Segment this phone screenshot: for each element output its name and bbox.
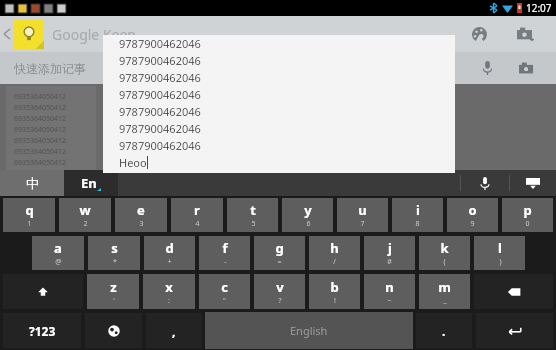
button[interactable]: x	[143, 274, 195, 309]
staticText: e	[137, 201, 145, 219]
staticText: '	[113, 296, 115, 306]
staticText: w	[79, 201, 91, 219]
staticText: f	[222, 239, 228, 257]
staticText: @	[55, 257, 62, 267]
staticText: j	[388, 239, 392, 257]
button[interactable]: o	[447, 198, 498, 232]
staticText: 6935364050412	[14, 114, 67, 125]
staticText: k	[440, 239, 449, 257]
staticText: r	[194, 201, 200, 219]
staticText: t	[250, 201, 256, 219]
staticText: i	[416, 201, 420, 219]
button[interactable]: Back	[0, 16, 14, 52]
button[interactable]: 中	[0, 170, 64, 196]
button[interactable]: b	[309, 274, 360, 309]
staticText: 8	[415, 219, 420, 229]
staticText: 4	[195, 219, 200, 229]
staticText: *	[113, 257, 117, 267]
staticText: 12:07	[526, 1, 552, 15]
staticText: .	[442, 323, 446, 339]
button[interactable]: g	[254, 236, 305, 270]
button[interactable]: d	[144, 236, 195, 270]
button[interactable]: z	[87, 274, 139, 309]
staticText: 2	[83, 219, 88, 229]
button[interactable]: f	[199, 236, 250, 270]
staticText: -	[224, 257, 227, 267]
staticText: d	[165, 239, 174, 257]
staticText: 6935364050412	[14, 158, 67, 169]
staticText: 6935364050412	[14, 136, 67, 147]
staticText: c	[221, 278, 228, 296]
button[interactable]: p	[502, 198, 553, 232]
button[interactable]: a	[32, 236, 84, 270]
staticText: v	[276, 278, 284, 296]
button[interactable]: Backspace	[474, 274, 553, 309]
button[interactable]: m	[419, 274, 470, 309]
button[interactable]: k	[419, 236, 470, 270]
button[interactable]: Enter	[476, 313, 553, 348]
button[interactable]: i	[392, 198, 443, 232]
staticText: g	[275, 239, 284, 257]
button[interactable]: j	[364, 236, 415, 270]
staticText: 9787900462046	[119, 138, 201, 155]
staticText: 9787900462046	[119, 53, 201, 70]
staticText: =	[277, 257, 282, 267]
staticText: 中	[26, 175, 39, 191]
staticText: En	[81, 174, 97, 192]
staticText: :	[168, 296, 170, 306]
button[interactable]: Photo note	[512, 53, 542, 83]
button[interactable]: n	[364, 274, 415, 309]
staticText: 1	[27, 219, 32, 229]
button[interactable]: Voice input	[461, 170, 509, 196]
staticText: 6935364050412	[14, 147, 67, 158]
staticText: l	[498, 239, 502, 257]
button[interactable]: r	[171, 198, 223, 232]
button[interactable]: v	[254, 274, 305, 309]
button[interactable]: c	[199, 274, 250, 309]
button[interactable]: l	[474, 236, 525, 270]
staticText: b	[330, 278, 339, 296]
staticText: x	[165, 278, 173, 296]
staticText: 5	[251, 219, 256, 229]
button[interactable]: t	[227, 198, 278, 232]
staticText: (	[443, 257, 446, 267]
button[interactable]: Voice note	[472, 53, 502, 83]
button[interactable]: .	[416, 313, 472, 348]
button[interactable]: q	[3, 198, 55, 232]
staticText: u	[358, 201, 367, 219]
button[interactable]: h	[309, 236, 360, 270]
button[interactable]: ,	[146, 313, 202, 348]
button[interactable]: En	[64, 170, 118, 196]
staticText: Heoo	[119, 155, 147, 170]
staticText: Google Keep	[52, 25, 136, 44]
button[interactable]: w	[59, 198, 111, 232]
staticText: )	[499, 257, 502, 267]
staticText: q	[25, 201, 34, 219]
staticText: 9	[470, 219, 475, 229]
staticText: 9787900462046	[119, 70, 201, 87]
staticText: 9787900462046	[119, 87, 201, 104]
button[interactable]	[3, 274, 83, 309]
button[interactable]: y	[282, 198, 333, 232]
button[interactable]: Colour palette	[462, 17, 496, 51]
staticText: ?	[278, 296, 282, 306]
button[interactable]: ?123	[3, 313, 81, 348]
button[interactable]: English	[205, 312, 413, 349]
button[interactable]: Change language	[85, 313, 142, 348]
staticText: !	[334, 296, 336, 306]
staticText: 6	[306, 219, 311, 229]
button[interactable]: u	[337, 198, 388, 232]
staticText: 9787900462046	[119, 121, 201, 138]
staticText: o	[468, 201, 477, 219]
button[interactable]: e	[115, 198, 167, 232]
staticText: ,	[172, 323, 176, 339]
button[interactable]: s	[88, 236, 140, 270]
staticText: _	[443, 296, 447, 306]
staticText: m	[438, 278, 451, 296]
staticText: y	[304, 201, 312, 219]
button[interactable]	[14, 19, 44, 49]
staticText: 快速添加记事	[14, 61, 86, 76]
button[interactable]: Add photo	[508, 17, 542, 51]
button[interactable]: Hide keyboard	[510, 170, 556, 196]
staticText: a	[54, 239, 62, 257]
